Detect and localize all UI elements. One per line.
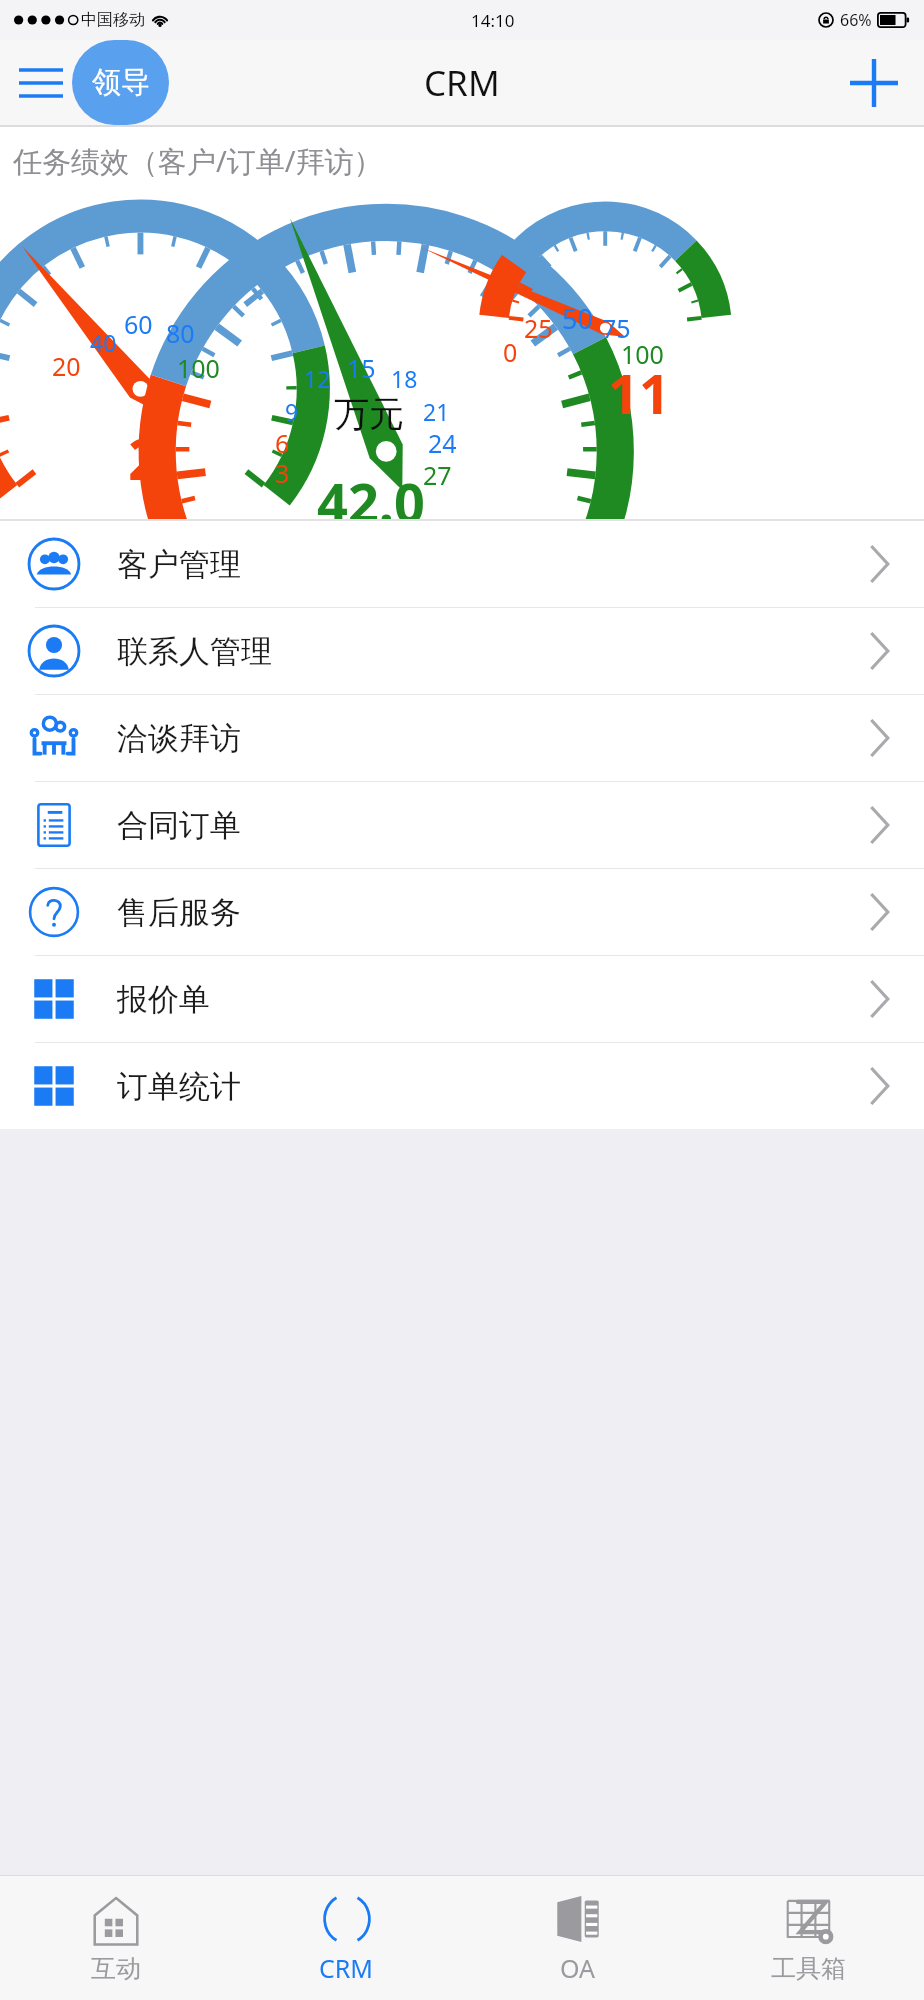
staticText: 6 <box>275 426 290 460</box>
button[interactable]: 报价单 <box>0 956 924 1042</box>
staticText: CRM <box>424 59 500 107</box>
staticText: 100 <box>621 337 664 371</box>
staticText: 0 <box>503 335 518 369</box>
staticText: 任务绩效（客户/订单/拜访） <box>13 141 383 181</box>
staticText: 12 <box>304 363 331 394</box>
staticText: 万元 <box>334 392 404 436</box>
staticText: 14:10 <box>471 9 515 32</box>
staticText: 洽谈拜访 <box>117 719 241 758</box>
staticText: 中国移动 <box>81 10 145 30</box>
button[interactable]: 联系人管理 <box>0 608 924 694</box>
staticText: 3 <box>275 456 290 490</box>
button[interactable]: 领导 <box>72 40 169 125</box>
staticText: 42.0 <box>317 465 425 539</box>
button[interactable]: 洽谈拜访 <box>0 695 924 781</box>
staticText: CRM <box>319 1951 374 1985</box>
button[interactable]: Menu <box>13 55 69 111</box>
staticText: 66% <box>840 9 872 31</box>
staticText: 互动 <box>91 1953 141 1984</box>
button[interactable]: 客户管理 <box>0 521 924 607</box>
staticText: 11 <box>608 356 670 430</box>
staticText: 联系人管理 <box>117 632 272 671</box>
staticText: 27 <box>423 458 452 492</box>
button[interactable]: CRM <box>231 1876 462 2000</box>
button[interactable]: 工具箱 <box>693 1876 924 2000</box>
staticText: 80 <box>166 316 195 350</box>
staticText: 18 <box>391 363 418 394</box>
staticText: 60 <box>124 307 153 341</box>
staticText: 报价单 <box>117 980 210 1019</box>
staticText: OA <box>560 1951 596 1985</box>
button[interactable]: 订单统计 <box>0 1043 924 1129</box>
staticText: 50 <box>562 300 593 337</box>
staticText: 工具箱 <box>771 1953 846 1984</box>
staticText: 75 <box>602 311 631 345</box>
staticText: 15 <box>347 351 376 385</box>
staticText: 合同订单 <box>117 806 241 845</box>
button[interactable]: 售后服务 <box>0 869 924 955</box>
staticText: 9 <box>285 396 299 427</box>
staticText: 领导 <box>92 64 150 101</box>
staticText: 24 <box>428 426 457 460</box>
staticText: 客户管理 <box>117 545 241 584</box>
button[interactable]: 合同订单 <box>0 782 924 868</box>
staticText: 40 <box>90 327 117 358</box>
button[interactable]: 互动 <box>0 1876 231 2000</box>
staticText: 25 <box>524 311 553 345</box>
button[interactable]: Add <box>842 51 906 115</box>
staticText: 2 <box>128 418 162 497</box>
staticText: 21 <box>423 396 450 427</box>
button[interactable]: OA <box>462 1876 693 2000</box>
staticText: 售后服务 <box>117 893 241 932</box>
staticText: 订单统计 <box>117 1067 241 1106</box>
staticText: 100 <box>177 351 220 385</box>
staticText: 20 <box>52 349 81 383</box>
